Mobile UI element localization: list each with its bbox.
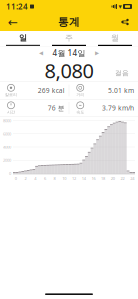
staticText: 4월 14일 — [52, 48, 85, 58]
staticText: 일 — [19, 33, 27, 43]
staticText: 4 — [34, 176, 36, 181]
staticText: 8,080 — [44, 57, 93, 84]
button[interactable]: 월 — [92, 31, 138, 46]
staticText: ▶ — [95, 50, 99, 56]
staticText: 거리 — [76, 92, 84, 97]
staticText: 0 — [9, 171, 11, 176]
staticText: 6000 — [3, 131, 11, 136]
button[interactable]: 공유 — [115, 13, 135, 31]
button[interactable]: 다음 날짜 — [92, 48, 101, 58]
staticText: 11:24 — [6, 1, 28, 12]
staticText: 14 — [82, 176, 86, 181]
staticText: 주 — [65, 33, 73, 43]
staticText: 월 — [111, 33, 119, 43]
staticText: 시간 — [7, 110, 15, 115]
staticText: 칼로리 — [5, 92, 17, 97]
staticText: ◀ — [39, 50, 43, 56]
staticText: 10 — [62, 176, 66, 181]
button[interactable]: 이전 날짜 — [36, 48, 45, 58]
staticText: 12 — [72, 176, 76, 181]
staticText: 24 — [130, 176, 134, 181]
staticText: 2000 — [3, 157, 11, 163]
staticText: ← — [8, 15, 18, 29]
staticText: 76 분 — [48, 104, 65, 112]
staticText: 20 — [111, 176, 115, 181]
staticText: 22 — [120, 176, 124, 181]
staticText: 통계 — [58, 15, 80, 28]
button[interactable]: 일 — [0, 31, 46, 46]
staticText: 2 — [24, 176, 26, 181]
staticText: 4000 — [3, 144, 11, 150]
staticText: 8000 — [3, 118, 11, 123]
staticText: 속도 — [76, 110, 84, 115]
button[interactable]: 주 — [46, 31, 92, 46]
staticText: 16 — [91, 176, 95, 181]
staticText: 5.01 km — [108, 86, 134, 95]
staticText: 269 kcal — [38, 86, 65, 95]
staticText: 걸음 — [115, 69, 129, 77]
staticText: 6 — [44, 176, 46, 181]
staticText: 8 — [54, 176, 56, 181]
staticText: 3.79 km/h — [102, 104, 134, 112]
staticText: ▾ — [118, 3, 121, 10]
staticText: 18 — [101, 176, 105, 181]
staticText: 0 — [15, 176, 17, 181]
button[interactable]: 뒤로 — [3, 13, 23, 31]
